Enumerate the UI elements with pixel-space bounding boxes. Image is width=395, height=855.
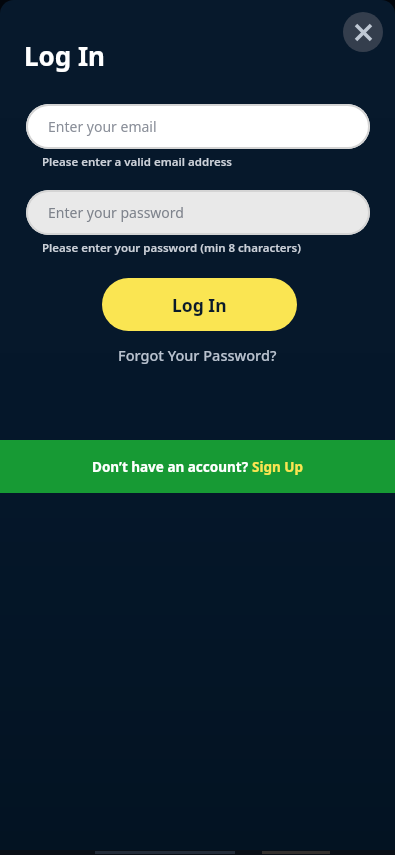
staticText: Log In [24, 38, 105, 73]
staticText: Please enter your password (min 8 charac… [42, 240, 301, 256]
button[interactable]: Enter your email [26, 104, 370, 149]
staticText: Please enter a valid email address [42, 154, 232, 170]
button[interactable]: Forgot Your Password? [118, 345, 277, 365]
staticText: Enter your email [48, 117, 157, 136]
staticText: Log In [172, 293, 227, 317]
button[interactable]: Log In [102, 278, 297, 331]
button[interactable]: Don’t have an account? [0, 440, 395, 493]
button[interactable]: Enter your password [26, 190, 370, 235]
staticText: Don’t have an account? [92, 458, 252, 476]
button[interactable] [343, 12, 383, 52]
staticText: Sign Up [252, 458, 304, 476]
staticText: Enter your password [48, 203, 184, 222]
